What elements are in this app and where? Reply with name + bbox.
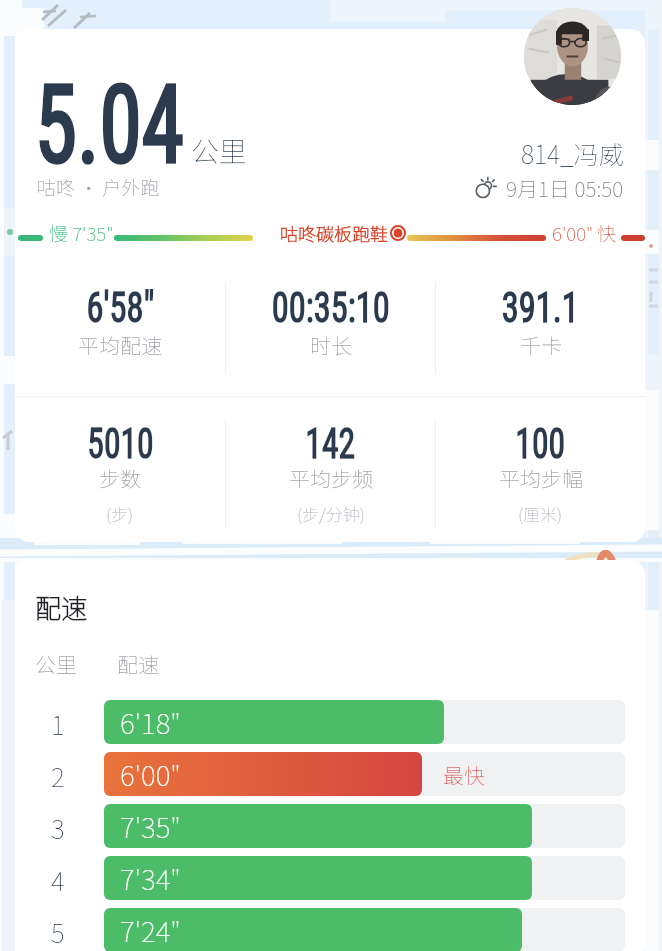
button[interactable]: 5.04: [15, 29, 645, 542]
staticText: 6'00" 快: [552, 219, 617, 247]
staticText: 7'35": [120, 806, 181, 847]
staticText: 公里: [35, 649, 77, 679]
staticText: 慢 7'35": [49, 219, 114, 247]
staticText: 391.1: [502, 282, 579, 332]
staticText: 100: [515, 419, 566, 468]
staticText: 814_冯威: [521, 135, 624, 171]
staticText: 4: [51, 861, 65, 899]
staticText: (厘米): [518, 501, 563, 526]
staticText: 时长: [310, 330, 352, 360]
staticText: 00:35:10: [272, 282, 390, 332]
staticText: 最快: [443, 760, 485, 790]
staticText: 1: [51, 705, 65, 743]
staticText: 咕咚 · 户外跑: [37, 173, 160, 201]
staticText: (步/分钟): [297, 501, 365, 526]
staticText: 6'00": [120, 754, 181, 795]
staticText: 公里: [191, 130, 248, 171]
staticText: 步数: [99, 463, 141, 493]
staticText: 9月1日 05:50: [506, 173, 624, 203]
staticText: 6'18": [120, 702, 181, 743]
staticText: 7'34": [120, 858, 181, 899]
staticText: 5.04: [35, 63, 184, 188]
staticText: 2: [51, 757, 65, 795]
button[interactable]: User avatar: [524, 8, 621, 105]
staticText: 6'58": [86, 282, 154, 332]
staticText: 平均步幅: [499, 463, 583, 493]
staticText: 5010: [87, 419, 154, 468]
button[interactable]: 配速: [15, 560, 645, 951]
staticText: 3: [51, 809, 65, 847]
staticText: 配速: [35, 588, 88, 626]
staticText: 平均步频: [289, 463, 373, 493]
staticText: 7'24": [120, 910, 181, 951]
staticText: 平均配速: [78, 330, 162, 360]
staticText: 配速: [117, 649, 159, 679]
staticText: (步): [106, 501, 134, 526]
staticText: 142: [305, 419, 356, 468]
staticText: 千卡: [520, 330, 562, 360]
staticText: 咕咚碳板跑鞋: [280, 220, 388, 246]
staticText: 5: [51, 913, 65, 951]
